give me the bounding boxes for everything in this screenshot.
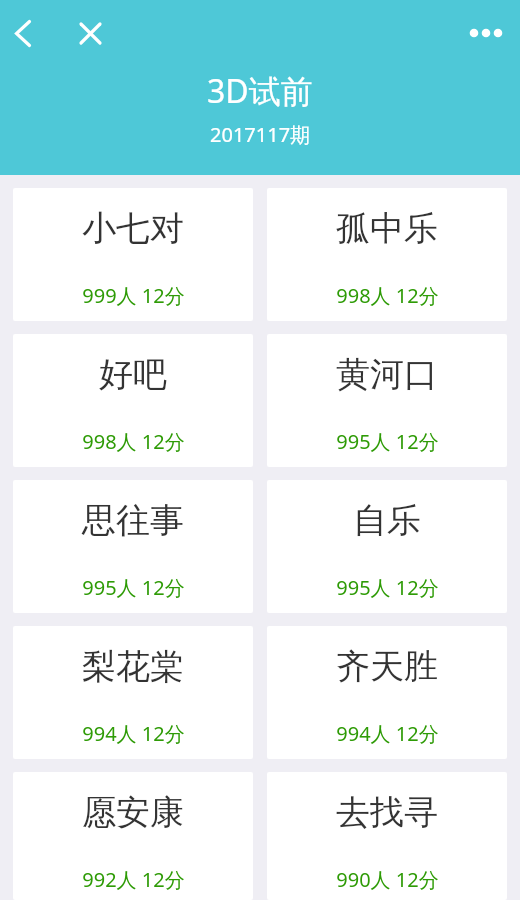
staticText: 好吧: [99, 353, 167, 396]
staticText: 去找寻: [336, 791, 438, 834]
staticText: 998人 12分: [82, 428, 185, 455]
button[interactable]: 愿安康: [13, 772, 253, 900]
staticText: 思往事: [82, 499, 184, 542]
button[interactable]: 思往事: [13, 480, 253, 613]
staticText: 自乐: [353, 499, 421, 542]
button[interactable]: 梨花棠: [13, 626, 253, 759]
staticText: 999人 12分: [82, 282, 185, 309]
staticText: 孤中乐: [336, 207, 438, 250]
staticText: 994人 12分: [82, 720, 185, 747]
staticText: 3D试前: [207, 69, 313, 113]
staticText: 995人 12分: [336, 574, 439, 601]
staticText: 994人 12分: [336, 720, 439, 747]
button[interactable]: 好吧: [13, 334, 253, 467]
staticText: 齐天胜: [336, 645, 438, 688]
button[interactable]: 黄河口: [267, 334, 507, 467]
button[interactable]: 齐天胜: [267, 626, 507, 759]
staticText: 992人 12分: [82, 866, 185, 893]
button[interactable]: Back: [0, 9, 48, 57]
button[interactable]: 自乐: [267, 480, 507, 613]
button[interactable]: Close: [66, 9, 114, 57]
staticText: 995人 12分: [82, 574, 185, 601]
staticText: 995人 12分: [336, 428, 439, 455]
button[interactable]: 孤中乐: [267, 188, 507, 321]
staticText: 2017117期: [210, 121, 311, 148]
button[interactable]: More options: [462, 9, 510, 57]
staticText: 小七对: [82, 207, 184, 250]
staticText: 998人 12分: [336, 282, 439, 309]
staticText: 黄河口: [336, 353, 438, 396]
button[interactable]: 去找寻: [267, 772, 507, 900]
staticText: 梨花棠: [82, 645, 184, 688]
button[interactable]: 小七对: [13, 188, 253, 321]
staticText: 愿安康: [82, 791, 184, 834]
staticText: 990人 12分: [336, 866, 439, 893]
